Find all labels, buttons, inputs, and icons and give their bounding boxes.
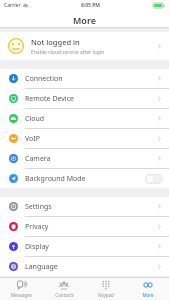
staticText: Cloud — [25, 114, 156, 124]
staticText: Display — [25, 242, 156, 252]
staticText: More — [73, 14, 96, 26]
staticText: Settings — [25, 202, 156, 212]
button[interactable]: Language — [0, 257, 169, 276]
staticText: Contacts — [55, 292, 74, 298]
button[interactable]: Remote Device — [0, 89, 169, 108]
staticText: Carrier — [4, 2, 21, 9]
button[interactable]: Cloud — [0, 109, 169, 128]
button[interactable]: VoIP — [0, 129, 169, 148]
staticText: Messages — [11, 292, 32, 298]
staticText: Background Mode — [25, 174, 145, 184]
button[interactable]: Settings — [0, 197, 169, 216]
staticText: Connection — [25, 74, 156, 84]
button[interactable]: More — [127, 278, 169, 300]
staticText: Remote Device — [25, 94, 156, 104]
button[interactable]: Contacts — [43, 278, 85, 300]
staticText: 8:05 PM — [81, 2, 100, 9]
button[interactable]: Not logged in — [0, 32, 169, 60]
staticText: Enable cloud service after login — [31, 49, 105, 56]
staticText: More — [142, 292, 154, 298]
staticText: Not logged in — [31, 37, 80, 47]
staticText: Language — [25, 262, 156, 272]
button[interactable]: Background Mode toggle — [145, 174, 163, 184]
button[interactable]: Messages — [0, 278, 43, 300]
staticText: VoIP — [25, 134, 156, 144]
button[interactable]: Background Mode — [0, 169, 169, 188]
staticText: Camera — [25, 154, 156, 164]
button[interactable]: Privacy — [0, 217, 169, 236]
button[interactable]: Camera — [0, 149, 169, 168]
button[interactable]: Display — [0, 237, 169, 256]
button[interactable]: Connection — [0, 69, 169, 88]
staticText: Privacy — [25, 222, 156, 232]
staticText: Keypad — [98, 292, 114, 298]
button[interactable]: Keypad — [85, 278, 127, 300]
